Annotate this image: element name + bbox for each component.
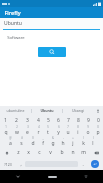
staticText: q	[4, 129, 8, 136]
staticText: i	[77, 129, 79, 136]
button[interactable]: .	[78, 158, 87, 170]
button[interactable]: Recents	[69, 170, 103, 183]
staticText: 8	[77, 117, 80, 124]
staticText: e	[26, 129, 29, 136]
staticText: 2	[15, 117, 18, 124]
staticText: 4	[37, 117, 40, 124]
staticText: .	[82, 161, 84, 167]
staticText: n	[71, 149, 75, 156]
staticText: 1	[5, 125, 7, 129]
button[interactable]: 7	[63, 125, 73, 136]
staticText: j	[72, 140, 74, 147]
button[interactable]: n	[67, 147, 78, 158]
button[interactable]: ,	[16, 158, 25, 170]
staticText: 2	[16, 125, 18, 129]
button[interactable]: Backspace	[89, 147, 103, 158]
button[interactable]: Voice input	[93, 106, 103, 115]
button[interactable]: 1	[0, 125, 11, 136]
button[interactable]: 2	[11, 115, 22, 125]
button[interactable]: Search	[38, 47, 66, 57]
staticText: 7	[67, 117, 70, 124]
button[interactable]: c	[34, 147, 45, 158]
button[interactable]: 7	[63, 115, 73, 125]
staticText: @	[9, 136, 12, 140]
button[interactable]: Back	[0, 170, 35, 183]
staticText: w	[15, 129, 19, 136]
button[interactable]: 2	[11, 125, 22, 136]
staticText: g	[51, 140, 55, 147]
staticText: 5	[47, 125, 49, 129]
button[interactable]: m	[78, 147, 89, 158]
staticText: v	[49, 149, 52, 156]
button[interactable]: 3	[22, 125, 33, 136]
button[interactable]: b	[56, 147, 67, 158]
staticText: c	[38, 149, 41, 156]
button[interactable]: x	[23, 147, 34, 158]
staticText: y	[57, 129, 60, 136]
staticText: u	[66, 129, 70, 136]
staticText: Ubuntu	[4, 20, 22, 27]
button[interactable]: 6	[53, 125, 63, 136]
staticText: d	[31, 140, 35, 147]
button[interactable]: +	[68, 136, 78, 147]
staticText: f	[42, 140, 44, 147]
button[interactable]: 1	[0, 115, 11, 125]
staticText: 6	[57, 117, 60, 124]
button[interactable]: 0	[93, 115, 103, 125]
button[interactable]: Ubuntu	[0, 18, 103, 29]
button[interactable]: (	[78, 136, 88, 147]
staticText: Firefly	[4, 9, 21, 16]
button[interactable]: Ubuntu	[32, 106, 62, 115]
button[interactable]: 5	[43, 125, 53, 136]
staticText: +	[72, 136, 74, 140]
staticText: a	[9, 140, 12, 147]
staticText: p	[96, 129, 100, 136]
staticText: s	[20, 140, 23, 147]
staticText: $	[32, 136, 34, 140]
staticText: k	[82, 140, 85, 147]
staticText: z	[17, 149, 20, 156]
button[interactable]: 4	[33, 125, 43, 136]
button[interactable]: )	[88, 136, 98, 147]
button[interactable]: Shift	[0, 147, 13, 158]
button[interactable]: _	[38, 136, 48, 147]
staticText: o	[86, 129, 90, 136]
button[interactable]: Home	[35, 170, 69, 183]
staticText: 0	[97, 117, 100, 124]
staticText: h	[61, 140, 65, 147]
button[interactable]: z	[13, 147, 23, 158]
button[interactable]: 9	[83, 115, 93, 125]
staticText: 9	[87, 117, 90, 124]
staticText: r	[37, 129, 40, 136]
button[interactable]: -	[58, 136, 68, 147]
button[interactable]: 4	[33, 115, 43, 125]
staticText: -	[63, 136, 64, 140]
staticText: l	[92, 140, 94, 147]
button[interactable]: ubuntuline	[0, 106, 31, 115]
staticText: (	[83, 136, 84, 140]
button[interactable]: $	[27, 136, 38, 147]
button[interactable]: 8	[73, 125, 83, 136]
staticText: 4	[38, 125, 40, 129]
staticText: 1	[4, 117, 7, 124]
staticText: 7	[67, 125, 69, 129]
staticText: m	[81, 149, 86, 156]
button[interactable]: Ubangi	[63, 106, 93, 115]
button[interactable]: 9	[83, 125, 93, 136]
button[interactable]: 8	[73, 115, 83, 125]
button[interactable]: v	[45, 147, 56, 158]
staticText: #	[21, 136, 23, 140]
button[interactable]: 6	[53, 115, 63, 125]
staticText: ,	[20, 161, 22, 167]
button[interactable]: #	[16, 136, 27, 147]
button[interactable]: @	[5, 136, 16, 147]
button[interactable]: 0	[93, 125, 103, 136]
button[interactable]: &	[48, 136, 58, 147]
staticText: 8	[77, 125, 79, 129]
button[interactable]: ?123	[0, 158, 16, 170]
staticText: b	[60, 149, 64, 156]
button[interactable]: Enter	[91, 160, 99, 168]
button[interactable]: 5	[43, 115, 53, 125]
button[interactable]: 3	[22, 115, 33, 125]
